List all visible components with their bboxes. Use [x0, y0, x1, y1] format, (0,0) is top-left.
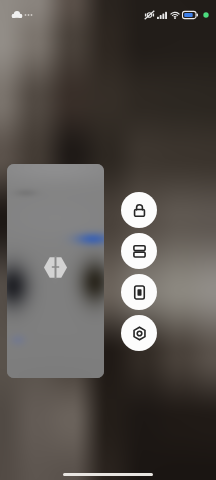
- button[interactable]: Lock this app: [121, 192, 157, 228]
- button[interactable]: App settings: [121, 315, 157, 351]
- button[interactable]: Open in pop-up view: [121, 274, 157, 310]
- button[interactable]: [7, 164, 104, 378]
- button[interactable]: Open in split screen view: [121, 233, 157, 269]
